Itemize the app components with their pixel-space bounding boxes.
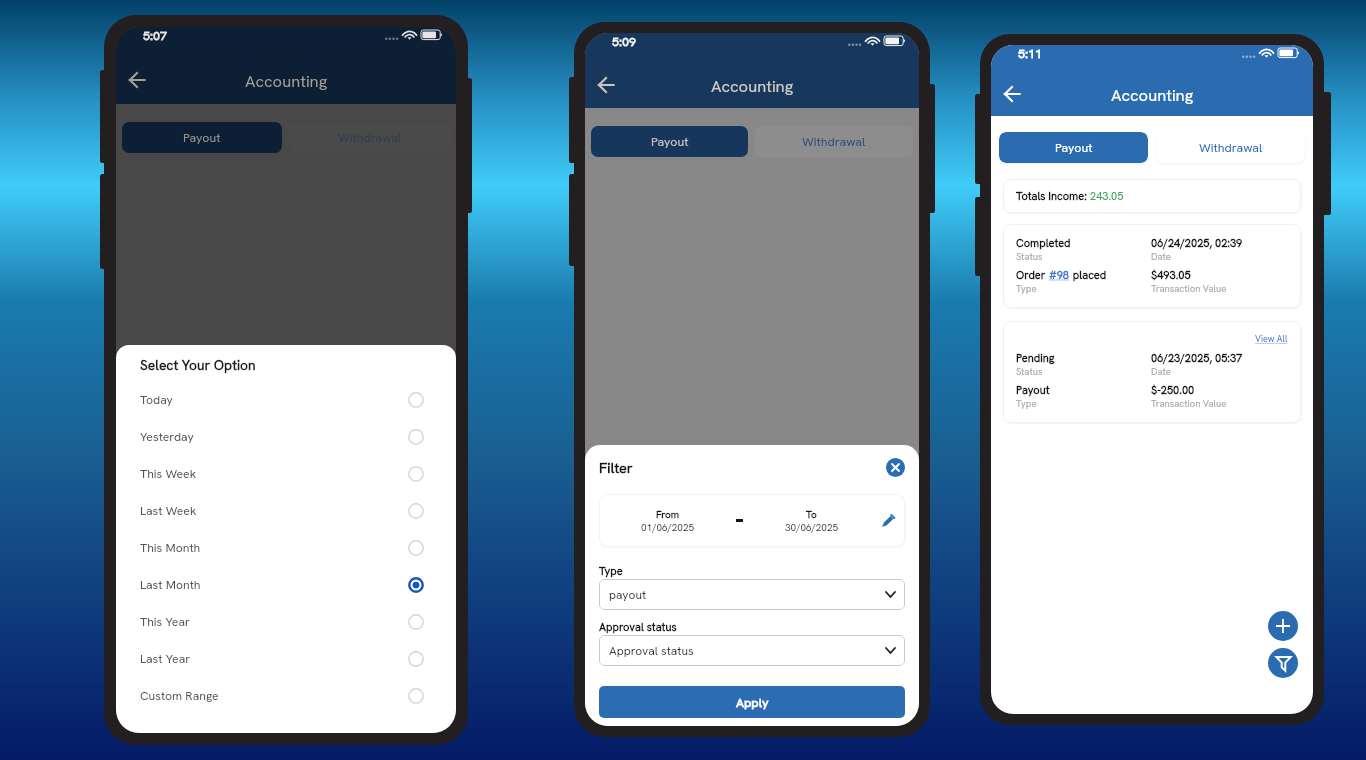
staticText: This Month [140, 540, 201, 556]
button[interactable]: Back [120, 63, 154, 97]
staticText: Type [599, 564, 623, 578]
button[interactable]: Back [995, 77, 1029, 111]
staticText: Date [1151, 250, 1171, 262]
staticText: Payout [183, 130, 221, 146]
button[interactable]: Add [1268, 611, 1298, 641]
staticText: Withdrawal [1199, 140, 1263, 156]
staticText: 5:09 [612, 33, 637, 49]
button[interactable]: View All [1255, 333, 1288, 345]
staticText: Status [1016, 250, 1043, 262]
staticText: placed [1070, 268, 1107, 282]
button[interactable]: Custom Range [116, 677, 456, 714]
button[interactable]: Payout [591, 126, 748, 157]
button[interactable]: From [599, 494, 905, 547]
staticText: Type [1016, 397, 1037, 409]
button[interactable]: This Month [116, 529, 456, 566]
staticText: $493.05 [1151, 268, 1191, 282]
staticText: Transaction Value [1151, 397, 1227, 409]
staticText: Payout [1055, 140, 1093, 156]
button[interactable]: Back [589, 68, 623, 102]
staticText: Date [1151, 365, 1171, 377]
staticText: To [806, 508, 817, 521]
button[interactable]: Withdrawal [755, 126, 913, 157]
staticText: This Week [140, 466, 197, 482]
button[interactable]: Payout [122, 122, 282, 153]
button[interactable]: Approval status [599, 635, 905, 666]
staticText: 30/06/2025 [785, 521, 839, 534]
button[interactable]: #98 [1049, 268, 1070, 282]
staticText: Accounting [245, 70, 328, 91]
staticText: Completed [1016, 236, 1071, 250]
staticText: Withdrawal [802, 134, 866, 150]
staticText: Approval status [609, 643, 694, 659]
button[interactable]: Totals Income: [1003, 179, 1301, 213]
staticText: Last Month [140, 577, 201, 593]
button[interactable]: View All [1003, 321, 1301, 423]
staticText: From [656, 508, 680, 521]
staticText: $-250.00 [1151, 383, 1195, 397]
button[interactable]: Filter [1268, 648, 1298, 678]
button[interactable]: This Year [116, 603, 456, 640]
staticText: 243.05 [1090, 189, 1124, 203]
button[interactable]: This Week [116, 455, 456, 492]
button[interactable]: Withdrawal [289, 122, 450, 153]
button[interactable]: Edit date range [880, 513, 896, 529]
staticText: Select Your Option [140, 356, 256, 374]
staticText: Accounting [711, 75, 794, 96]
staticText: Status [1016, 365, 1043, 377]
button[interactable]: Close filter [886, 458, 905, 477]
staticText: Totals Income: [1016, 189, 1090, 203]
staticText: Approval status [599, 620, 677, 634]
staticText: 5:11 [1018, 45, 1043, 61]
staticText: Pending [1016, 351, 1055, 365]
staticText: Accounting [1111, 84, 1194, 105]
staticText: Apply [736, 694, 769, 710]
staticText: Payout [1016, 383, 1050, 397]
staticText: Last Week [140, 503, 197, 519]
button[interactable]: Completed [1003, 224, 1301, 308]
staticText: Order [1016, 268, 1049, 282]
button[interactable]: Last Week [116, 492, 456, 529]
staticText: Yesterday [140, 429, 194, 445]
staticText: Payout [651, 134, 689, 150]
staticText: Custom Range [140, 688, 219, 704]
staticText: 06/24/2025, 02:39 [1151, 236, 1243, 250]
button[interactable]: Last Year [116, 640, 456, 677]
button[interactable]: Payout [999, 132, 1148, 163]
staticText: Transaction Value [1151, 282, 1227, 294]
button[interactable]: Apply [599, 686, 905, 718]
staticText: 5:07 [143, 27, 168, 43]
button[interactable]: payout [599, 579, 905, 610]
button[interactable]: Today [116, 381, 456, 418]
staticText: payout [609, 587, 647, 603]
staticText: Withdrawal [338, 130, 402, 146]
button[interactable]: Last Month [116, 566, 456, 603]
staticText: Last Year [140, 651, 191, 667]
staticText: Filter [599, 458, 633, 477]
staticText: Type [1016, 282, 1037, 294]
button[interactable]: Withdrawal [1156, 132, 1305, 163]
staticText: 06/23/2025, 05:37 [1151, 351, 1243, 365]
staticText: Today [140, 392, 173, 408]
staticText: 01/06/2025 [641, 521, 695, 534]
button[interactable]: Yesterday [116, 418, 456, 455]
staticText: This Year [140, 614, 190, 630]
